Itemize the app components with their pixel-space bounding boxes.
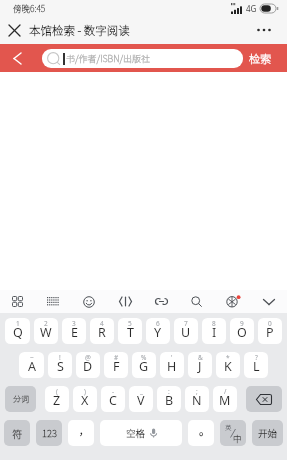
staticText: Q (13, 324, 23, 341)
staticText: G (139, 358, 149, 375)
staticText: J (198, 358, 202, 375)
staticText: O (237, 324, 247, 341)
button[interactable] (251, 290, 287, 313)
staticText: 6 (156, 319, 160, 328)
button[interactable]: ( (45, 386, 69, 412)
button[interactable]: 6 (146, 318, 170, 344)
button[interactable]: 。 (188, 420, 214, 446)
staticText: F (113, 358, 120, 375)
staticText: Y (154, 324, 162, 341)
button[interactable]: 分词 (5, 386, 36, 412)
staticText: ， (79, 422, 90, 438)
staticText: 0 (268, 319, 272, 328)
button[interactable]: 空格 (100, 420, 182, 446)
staticText: ( (56, 387, 58, 396)
button[interactable]: 符 (4, 420, 30, 446)
staticText: 分词 (13, 393, 29, 405)
staticText: ) (84, 387, 86, 396)
staticText: N (192, 392, 202, 409)
staticText: E (71, 324, 78, 341)
staticText: # (114, 353, 119, 362)
staticText: D (83, 358, 93, 375)
staticText: S (57, 358, 64, 375)
staticText: * (226, 353, 230, 362)
button[interactable]: ~ (19, 352, 44, 378)
staticText: @ (85, 353, 91, 362)
button[interactable]: 9 (230, 318, 254, 344)
button[interactable]: ! (48, 352, 72, 378)
staticText: W (40, 324, 52, 341)
button[interactable]: 检索 (243, 44, 287, 72)
button[interactable] (107, 290, 143, 313)
button[interactable] (71, 290, 107, 313)
button[interactable] (253, 16, 287, 44)
staticText: ~ (30, 353, 34, 362)
staticText: 符 (12, 426, 22, 440)
staticText: 5 (128, 319, 132, 328)
staticText: 4G (246, 3, 257, 14)
button[interactable]: 123 (36, 420, 62, 446)
staticText: 7 (184, 319, 188, 328)
button[interactable]: _ (129, 386, 153, 412)
staticText: 英 (225, 422, 232, 431)
button[interactable]: * (216, 352, 240, 378)
button[interactable]: # (104, 352, 128, 378)
button[interactable]: 2 (34, 318, 58, 344)
staticText: L (253, 358, 260, 375)
button[interactable]: - (101, 386, 125, 412)
button[interactable]: ; (185, 386, 209, 412)
button[interactable] (0, 44, 33, 72)
button[interactable] (246, 386, 282, 412)
button[interactable]: 书/作者/ISBN/出版社 (42, 49, 243, 68)
button[interactable]: 7 (174, 318, 198, 344)
staticText: Z (53, 392, 61, 409)
button[interactable]: % (132, 352, 156, 378)
button[interactable]: 8 (202, 318, 226, 344)
button[interactable] (143, 290, 179, 313)
staticText: V (137, 392, 145, 409)
button[interactable]: ， (68, 420, 94, 446)
button[interactable]: : (157, 386, 181, 412)
staticText: U (181, 324, 191, 341)
button[interactable]: 5 (118, 318, 142, 344)
button[interactable] (215, 290, 251, 313)
button[interactable]: & (188, 352, 212, 378)
staticText: R (98, 324, 106, 341)
button[interactable] (35, 290, 71, 313)
button[interactable] (0, 290, 35, 313)
button[interactable]: 4 (90, 318, 114, 344)
button[interactable]: ? (244, 352, 268, 378)
staticText: K (224, 358, 232, 375)
staticText: H (167, 358, 177, 375)
staticText: I (212, 324, 217, 341)
staticText: 书/作者/ISBN/出版社 (66, 52, 151, 65)
button[interactable]: 英 (220, 420, 246, 446)
button[interactable] (179, 290, 215, 313)
staticText: 傍晚6:45 (13, 2, 46, 14)
staticText: P (266, 324, 274, 341)
staticText: & (198, 353, 203, 362)
button[interactable]: / (213, 386, 237, 412)
staticText: 。 (199, 422, 210, 438)
button[interactable]: ) (73, 386, 97, 412)
staticText: B (165, 392, 174, 409)
button[interactable]: 1 (5, 318, 30, 344)
staticText: 1 (16, 319, 20, 328)
staticText: 开始 (258, 426, 278, 440)
staticText: M (219, 392, 231, 409)
staticText: ! (59, 353, 61, 362)
button[interactable]: @ (76, 352, 100, 378)
button[interactable]: ' (160, 352, 184, 378)
button[interactable] (0, 16, 29, 44)
staticText: 本馆检索 - 数字阅读 (29, 22, 130, 39)
button[interactable]: 3 (62, 318, 86, 344)
staticText: C (109, 392, 117, 409)
staticText: 9 (240, 319, 244, 328)
button[interactable]: 开始 (252, 420, 283, 446)
staticText: / (224, 387, 227, 396)
staticText: % (141, 353, 147, 362)
staticText: - (112, 387, 115, 396)
staticText: A (28, 358, 36, 375)
button[interactable]: 0 (258, 318, 282, 344)
staticText: 检索 (249, 50, 271, 66)
